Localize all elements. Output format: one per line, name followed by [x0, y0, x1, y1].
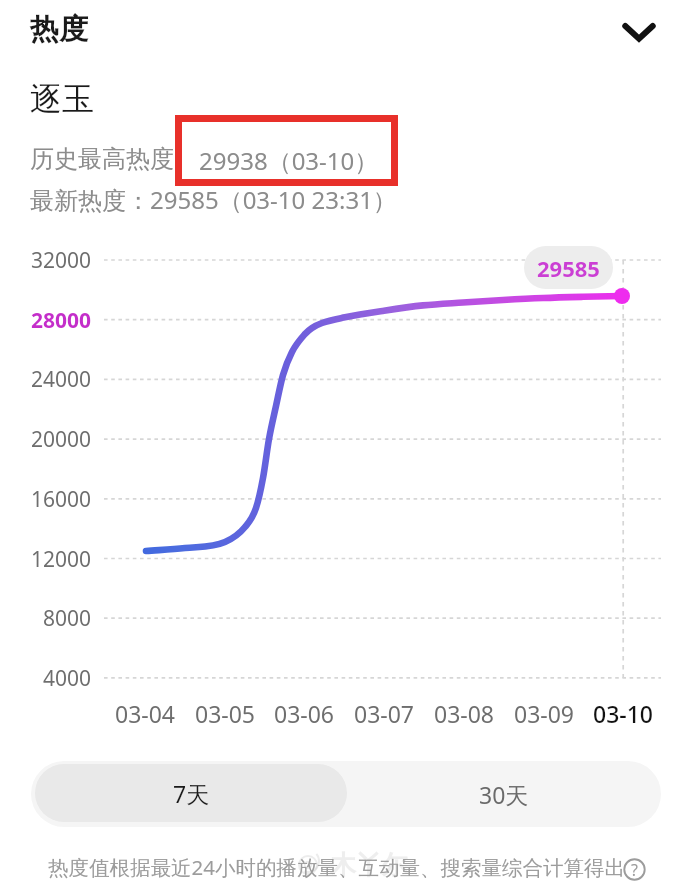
- staticText: 28000: [30, 306, 91, 335]
- staticText: 29585: [537, 253, 600, 283]
- staticText: 16000: [30, 485, 91, 514]
- staticText: 29938（03-10）: [199, 144, 379, 177]
- staticText: 03-10: [593, 698, 654, 729]
- staticText: ?: [631, 859, 638, 881]
- staticText: 热度值根据最近24小时的播放量、互动量、搜索量综合计算得出: [48, 853, 625, 881]
- staticText: 03-06: [274, 698, 335, 729]
- staticText: 最新热度：29585（03-10 23:31）: [30, 183, 397, 216]
- staticText: 8000: [42, 604, 91, 633]
- button[interactable]: 7天: [35, 764, 347, 822]
- staticText: 热度: [30, 11, 88, 48]
- staticText: 03-05: [195, 698, 256, 729]
- staticText: 32000: [30, 246, 91, 275]
- staticText: 03-04: [115, 698, 176, 729]
- staticText: 4000: [42, 664, 91, 693]
- staticText: 木丫尔: [330, 849, 408, 882]
- button[interactable]: Help: [620, 855, 649, 884]
- staticText: 逐玉: [30, 79, 94, 119]
- staticText: 03-08: [434, 698, 495, 729]
- button[interactable]: 30天: [347, 761, 661, 827]
- staticText: 7天: [173, 778, 210, 809]
- button[interactable]: Collapse: [611, 5, 667, 61]
- staticText: 24000: [30, 365, 91, 394]
- staticText: 12000: [30, 545, 91, 574]
- staticText: 历史最高热度: [30, 144, 174, 174]
- staticText: 20000: [30, 425, 91, 454]
- staticText: 03-07: [354, 698, 415, 729]
- staticText: 03-09: [514, 698, 575, 729]
- staticText: 30天: [479, 779, 529, 810]
